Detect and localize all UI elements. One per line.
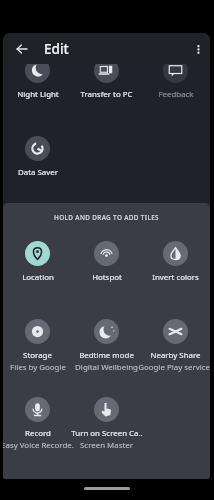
staticText: Data Saver xyxy=(18,167,58,178)
button[interactable]: More options xyxy=(187,38,209,60)
button[interactable]: Location xyxy=(3,241,72,319)
button[interactable]: Nearby Share xyxy=(141,319,210,397)
button[interactable]: Transfer to PC xyxy=(72,58,141,136)
button[interactable]: Hotspot xyxy=(72,241,141,319)
button[interactable]: Data Saver xyxy=(3,136,72,214)
staticText: Location xyxy=(22,272,54,283)
staticText: Storage xyxy=(23,350,52,361)
staticText: Digital Wellbeing xyxy=(75,362,138,373)
button[interactable]: Back xyxy=(11,38,33,60)
staticText: Invert colors xyxy=(152,272,199,283)
staticText: Edit xyxy=(44,40,69,58)
staticText: Easy Voice Recorde. xyxy=(3,440,74,451)
staticText: Files by Google xyxy=(10,362,66,373)
staticText: Nearby Share xyxy=(150,350,201,361)
staticText: HOLD AND DRAG TO ADD TILES xyxy=(3,213,210,222)
staticText: Hotspot xyxy=(92,272,122,283)
button[interactable]: Night Light xyxy=(3,58,72,136)
staticText: Bedtime mode xyxy=(79,350,134,361)
button[interactable]: Feedback xyxy=(141,58,210,136)
staticText: Feedback xyxy=(158,89,194,100)
button[interactable]: Record xyxy=(3,397,72,475)
button[interactable]: Turn on Screen Ca.. xyxy=(72,397,141,475)
staticText: Google Play services xyxy=(138,362,210,373)
staticText: Night Light xyxy=(17,89,59,100)
button[interactable]: Storage xyxy=(3,319,72,397)
button[interactable]: Invert colors xyxy=(141,241,210,319)
staticText: Transfer to PC xyxy=(80,89,133,100)
staticText: Turn on Screen Ca.. xyxy=(71,428,143,439)
staticText: Screen Master xyxy=(80,440,133,451)
button[interactable]: Bedtime mode xyxy=(72,319,141,397)
staticText: Record xyxy=(25,428,51,439)
